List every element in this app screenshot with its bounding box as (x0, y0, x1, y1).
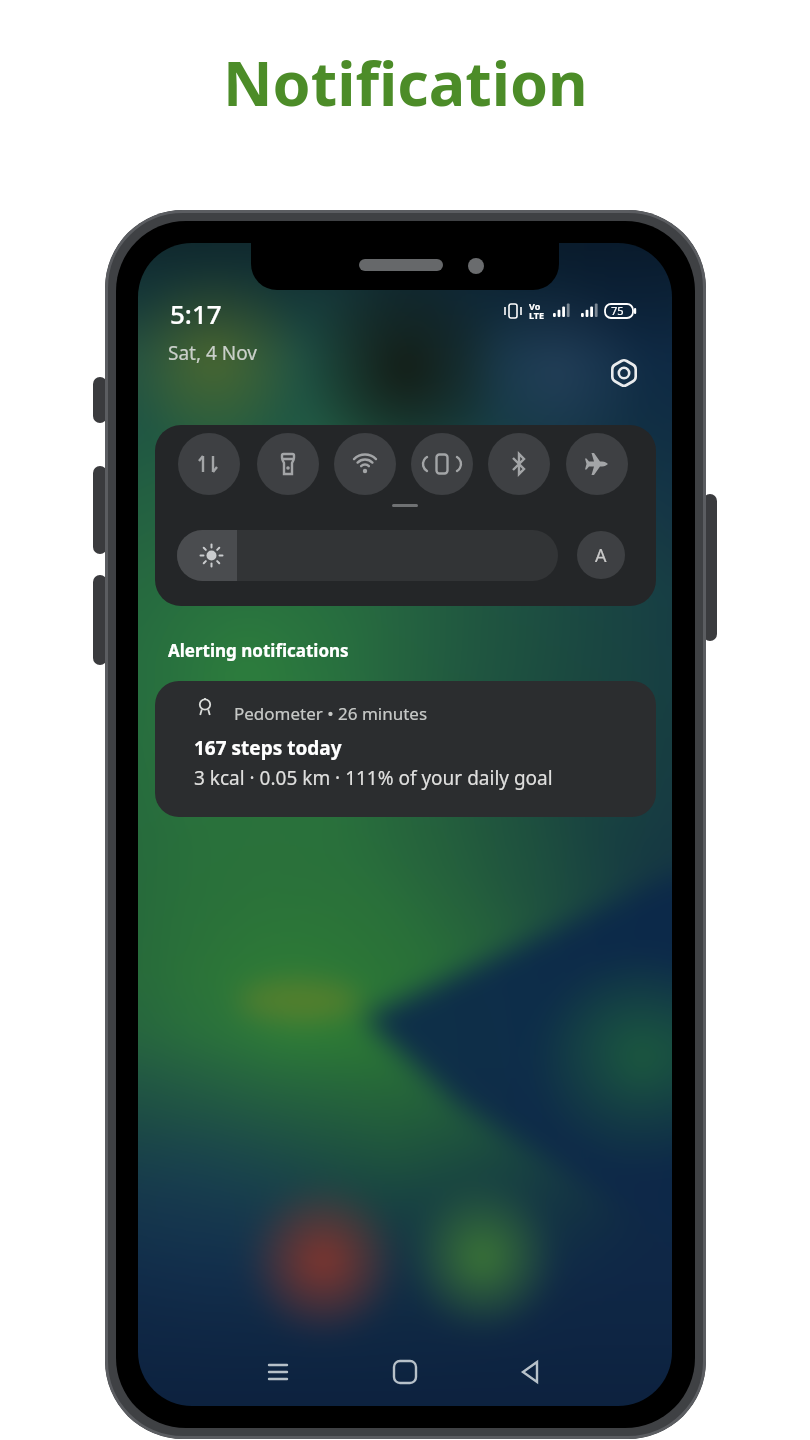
staticText: Sat, 4 Nov (168, 340, 257, 366)
button[interactable] (256, 1350, 300, 1394)
staticText: Notification (223, 41, 588, 124)
button[interactable] (383, 1350, 427, 1394)
staticText: Vo (529, 300, 541, 312)
button[interactable] (177, 530, 558, 581)
button[interactable] (257, 433, 319, 495)
button[interactable] (509, 1350, 553, 1394)
button[interactable] (411, 433, 473, 495)
button[interactable] (608, 357, 640, 389)
staticText: Alerting notifications (168, 639, 349, 662)
staticText: 5:17 (170, 296, 222, 331)
staticText: 3 kcal · 0.05 km · 111% of your daily go… (194, 765, 553, 791)
button[interactable]: Pedometer • 26 minutes (155, 681, 656, 817)
button[interactable]: A (577, 531, 625, 579)
button[interactable] (178, 433, 240, 495)
staticText: 75 (611, 303, 624, 318)
button[interactable] (566, 433, 628, 495)
staticText: Pedometer • 26 minutes (234, 702, 428, 725)
button[interactable] (334, 433, 396, 495)
staticText: LTE (529, 309, 545, 321)
button[interactable] (488, 433, 550, 495)
staticText: 167 steps today (194, 735, 342, 761)
staticText: A (595, 543, 607, 568)
